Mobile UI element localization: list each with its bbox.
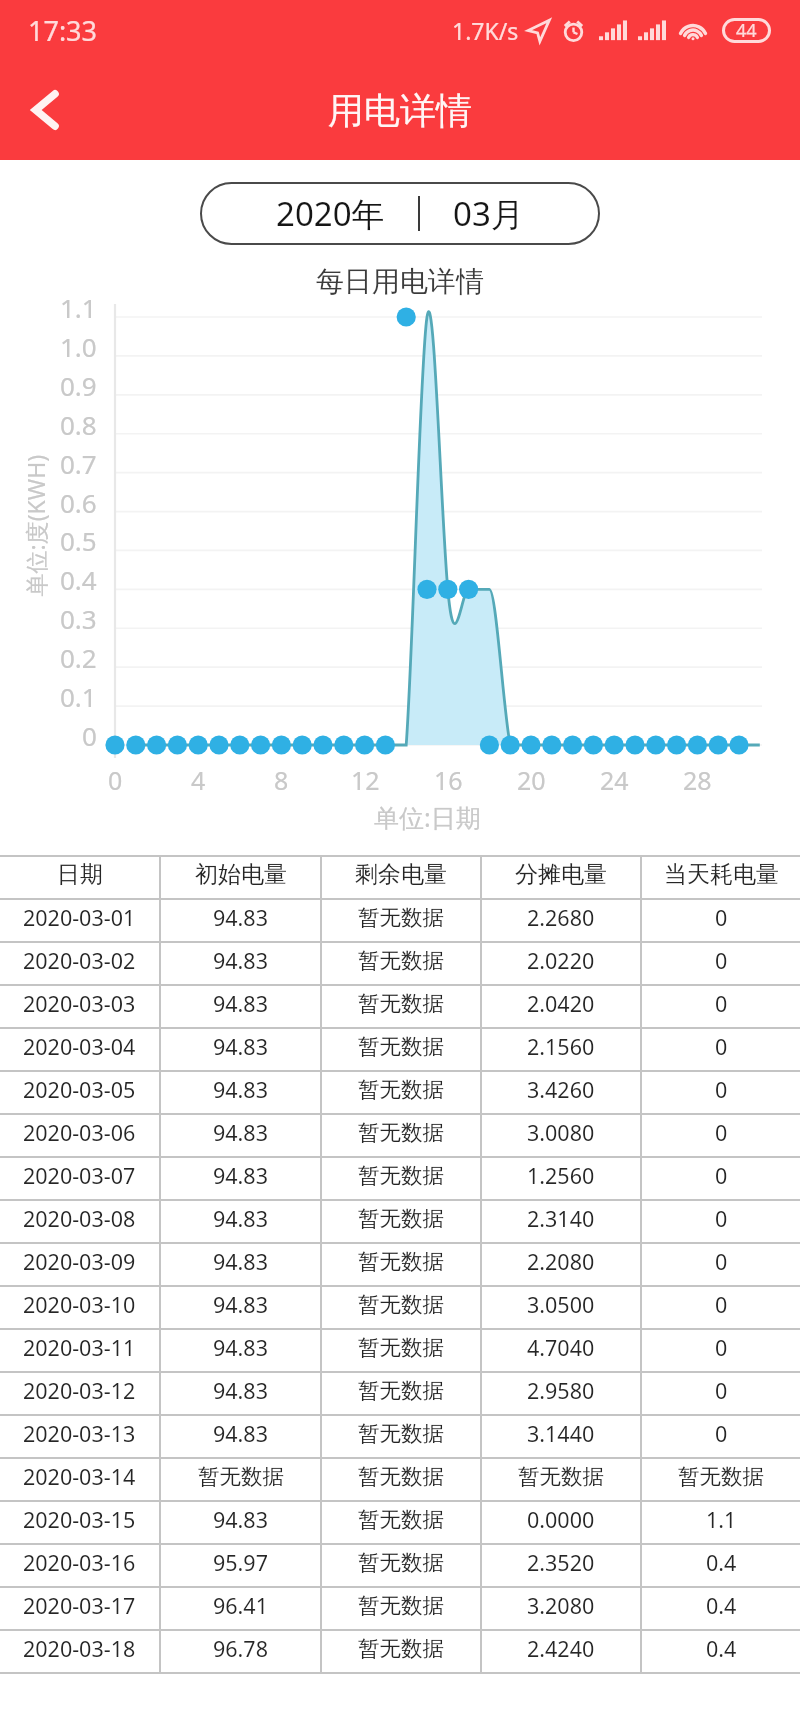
staticText: 0 [715,1333,728,1362]
staticText: 分摊电量 [515,860,607,889]
staticText: 17:33 [28,12,98,49]
staticText: 暂无数据 [358,904,444,931]
staticText: 暂无数据 [358,1291,444,1318]
staticText: 16 [434,763,463,797]
staticText: 94.83 [213,989,268,1018]
staticText: 03月 [453,191,524,236]
staticText: 暂无数据 [358,1119,444,1146]
staticText: 暂无数据 [358,1205,444,1232]
staticText: 0 [715,1376,728,1405]
staticText: 0.5 [60,523,97,558]
button[interactable]: 2020-03-15 [0,1502,800,1543]
staticText: 暂无数据 [518,1463,604,1490]
staticText: 94.83 [213,1075,268,1104]
staticText: 94.83 [213,903,268,932]
staticText: 94.83 [213,1505,268,1534]
button[interactable]: 2020-03-16 [0,1545,800,1586]
staticText: 剩余电量 [355,860,447,889]
staticText: 暂无数据 [358,947,444,974]
button[interactable]: 2020-03-02 [0,943,800,984]
staticText: 0 [715,1161,728,1190]
staticText: 2.0220 [527,946,595,975]
staticText: 94.83 [213,1161,268,1190]
staticText: 1.0 [60,329,97,364]
staticText: 0 [715,1032,728,1061]
button[interactable]: 2020-03-07 [0,1158,800,1199]
staticText: 94.83 [213,1118,268,1147]
staticText: 用电详情 [328,88,472,133]
button[interactable]: 2020年 [200,182,600,245]
staticText: 2020-03-01 [23,903,136,932]
staticText: 暂无数据 [358,1076,444,1103]
staticText: 1.2560 [527,1161,595,1190]
staticText: 单位:度(KWH) [19,454,50,596]
staticText: 2020-03-07 [23,1161,136,1190]
staticText: 暂无数据 [358,1248,444,1275]
staticText: 2020-03-12 [23,1376,136,1405]
staticText: 2020-03-10 [23,1290,136,1319]
staticText: 2020-03-18 [23,1634,136,1663]
staticText: 8 [274,763,289,797]
staticText: 2020-03-13 [23,1419,136,1448]
staticText: 2020年 [276,191,385,236]
staticText: 0.4 [60,562,97,597]
button[interactable]: Back [12,77,78,143]
staticText: 0.2 [60,640,97,675]
button[interactable]: 2020-03-11 [0,1330,800,1371]
staticText: 日期 [57,860,103,889]
staticText: 2020-03-04 [23,1032,136,1061]
staticText: 0.8 [60,407,97,442]
staticText: 44 [736,18,757,43]
staticText: 94.83 [213,1419,268,1448]
button[interactable]: 2020-03-06 [0,1115,800,1156]
staticText: 2020-03-15 [23,1505,136,1534]
button[interactable]: 2020-03-09 [0,1244,800,1285]
staticText: 12 [351,763,380,797]
staticText: 0.9 [60,368,97,403]
staticText: 0 [715,1290,728,1319]
staticText: 单位:日期 [374,800,481,834]
button[interactable]: 2020-03-13 [0,1416,800,1457]
staticText: 2.2680 [527,903,595,932]
button[interactable]: 2020-03-05 [0,1072,800,1113]
staticText: 1.1 [60,290,97,325]
staticText: 2020-03-05 [23,1075,136,1104]
staticText: 0 [715,1204,728,1233]
staticText: 96.41 [213,1591,268,1620]
staticText: 0 [715,1419,728,1448]
staticText: 0.1 [60,679,97,714]
staticText: 2.0420 [527,989,595,1018]
staticText: 24 [600,763,629,797]
button[interactable]: 2020-03-10 [0,1287,800,1328]
button[interactable]: 2020-03-17 [0,1588,800,1629]
staticText: 2020-03-08 [23,1204,136,1233]
staticText: 暂无数据 [358,1334,444,1361]
staticText: 暂无数据 [198,1463,284,1490]
staticText: 暂无数据 [358,1377,444,1404]
staticText: 4.7040 [527,1333,595,1362]
button[interactable]: 2020-03-12 [0,1373,800,1414]
staticText: 0.7 [60,446,97,481]
button[interactable]: 2020-03-18 [0,1631,800,1672]
staticText: 0 [715,1118,728,1147]
staticText: 2020-03-11 [23,1333,136,1362]
button[interactable]: 2020-03-14 [0,1459,800,1500]
button[interactable]: 2020-03-01 [0,900,800,941]
staticText: 0 [715,1075,728,1104]
staticText: 暂无数据 [358,1549,444,1576]
button[interactable]: 2020-03-08 [0,1201,800,1242]
staticText: 94.83 [213,946,268,975]
staticText: 2.3520 [527,1548,595,1577]
button[interactable]: 2020-03-03 [0,986,800,1027]
staticText: 0 [715,903,728,932]
staticText: 暂无数据 [358,1506,444,1533]
staticText: 4 [191,763,206,797]
staticText: 1.7K/s [452,15,519,46]
staticText: 3.1440 [527,1419,595,1448]
button[interactable]: 2020-03-04 [0,1029,800,1070]
staticText: 当天耗电量 [664,860,779,889]
staticText: 每日用电详情 [0,264,800,299]
staticText: 0.4 [706,1548,737,1577]
staticText: 94.83 [213,1204,268,1233]
button[interactable]: 日期 [0,857,800,898]
